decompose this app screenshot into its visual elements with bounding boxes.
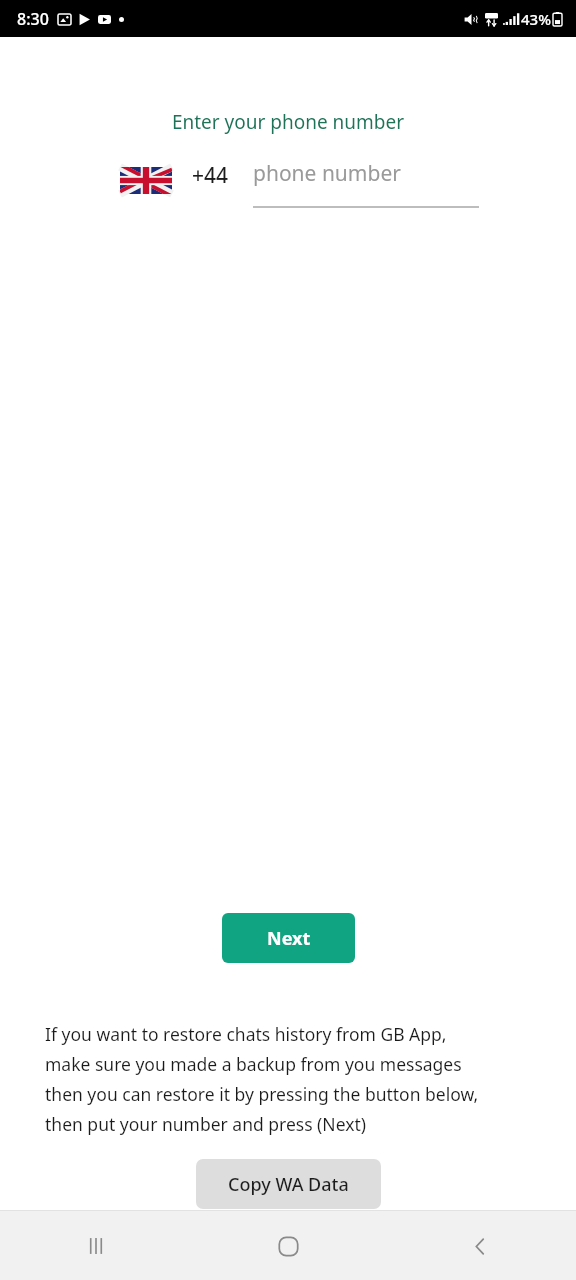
staticText: Next [267, 926, 311, 951]
button[interactable]: phone number [253, 159, 479, 208]
staticText: make sure you made a backup from you mes… [45, 1052, 462, 1076]
button[interactable]: Home [261, 1219, 315, 1273]
button[interactable]: Select country [120, 159, 172, 194]
button[interactable]: +44 [192, 159, 229, 190]
staticText: phone number [253, 159, 401, 188]
staticText: Copy WA Data [228, 1172, 349, 1197]
staticText: Enter your phone number [0, 109, 576, 135]
staticText: +44 [192, 161, 229, 190]
staticText: then put your number and press (Next) [45, 1112, 366, 1136]
staticText: If you want to restore chats history fro… [45, 1022, 447, 1046]
button[interactable]: Recent apps [69, 1219, 123, 1273]
button[interactable]: Copy WA Data [196, 1159, 381, 1209]
staticText: 43% [521, 9, 551, 29]
button[interactable]: Back [453, 1219, 507, 1273]
button[interactable]: Next [222, 913, 355, 963]
staticText: then you can restore it by pressing the … [45, 1082, 479, 1106]
staticText: 8:30 [17, 8, 49, 30]
